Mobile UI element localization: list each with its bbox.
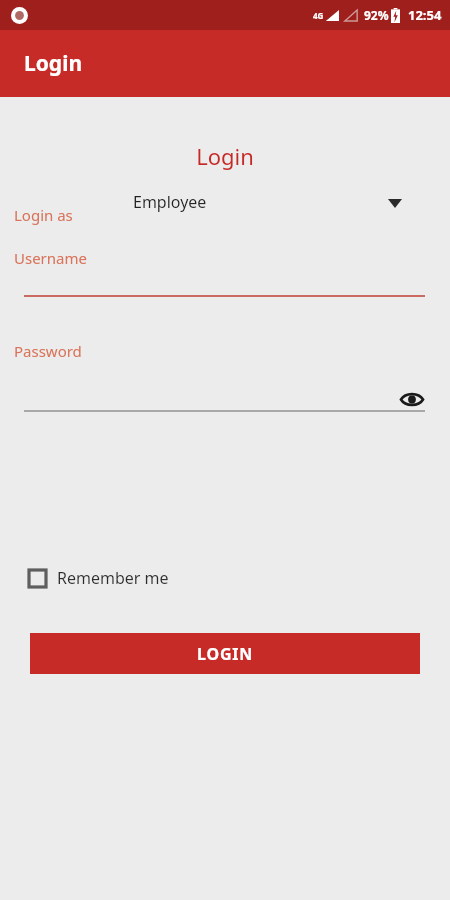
staticText: Login <box>0 141 450 171</box>
staticText: Password <box>14 341 82 361</box>
button[interactable]: Remember me <box>28 563 169 593</box>
staticText: Employee <box>133 191 207 213</box>
staticText: Remember me <box>57 567 169 589</box>
button[interactable]: Password <box>0 336 450 396</box>
button[interactable]: Login as <box>0 185 450 231</box>
button[interactable]: Show password <box>396 383 428 415</box>
staticText: 4G <box>313 10 324 21</box>
staticText: LOGIN <box>197 643 254 665</box>
other: Open login type dropdown <box>388 199 402 208</box>
button[interactable]: LOGIN <box>30 633 420 674</box>
staticText: 92% <box>364 7 389 23</box>
staticText: Username <box>14 248 87 268</box>
staticText: Login <box>24 49 83 78</box>
staticText: 12:54 <box>408 6 442 24</box>
staticText: Login as <box>14 205 73 225</box>
button[interactable]: Username <box>0 243 450 303</box>
